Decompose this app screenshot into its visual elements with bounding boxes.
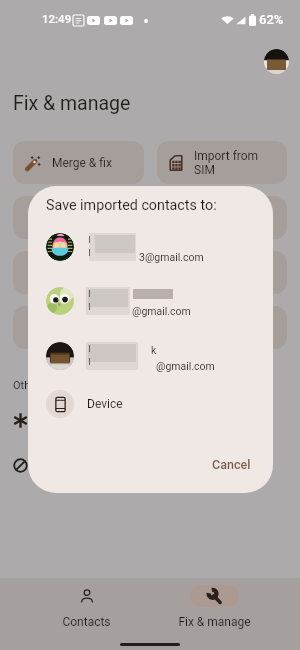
button[interactable]: k bbox=[28, 342, 273, 396]
button[interactable]: Import from SIM bbox=[157, 141, 287, 184]
button[interactable]: Settings bbox=[13, 413, 28, 428]
button[interactable]: Merge & fix bbox=[13, 141, 144, 184]
button[interactable]: Cancel bbox=[200, 451, 263, 478]
staticText: Other bbox=[13, 379, 40, 392]
staticText: @gmail.com bbox=[132, 305, 191, 317]
staticText: Merge & fix bbox=[52, 156, 112, 170]
staticText: @gmail.com bbox=[156, 360, 215, 372]
staticText: Fix & manage bbox=[178, 615, 251, 629]
staticText: Cancel bbox=[212, 457, 251, 472]
staticText: Import from SIM bbox=[194, 149, 259, 177]
button[interactable]: Account bbox=[264, 49, 289, 74]
button[interactable]: Blocked numbers bbox=[13, 458, 28, 473]
button[interactable]: Contacts bbox=[22, 578, 150, 629]
button[interactable]: 3@gmail.com bbox=[28, 233, 273, 287]
staticText: 12:49 bbox=[42, 12, 72, 25]
staticText: Device bbox=[87, 397, 123, 411]
button[interactable]: @gmail.com bbox=[28, 287, 273, 341]
staticText: Contacts bbox=[62, 615, 111, 629]
button[interactable]: Fix & manage bbox=[150, 578, 278, 629]
staticText: 62% bbox=[259, 12, 284, 27]
staticText: 3@gmail.com bbox=[139, 251, 204, 263]
staticText: k bbox=[151, 344, 157, 356]
staticText: Fix & manage bbox=[13, 92, 131, 115]
staticText: Save imported contacts to: bbox=[46, 197, 217, 214]
button[interactable]: Device bbox=[28, 382, 273, 426]
